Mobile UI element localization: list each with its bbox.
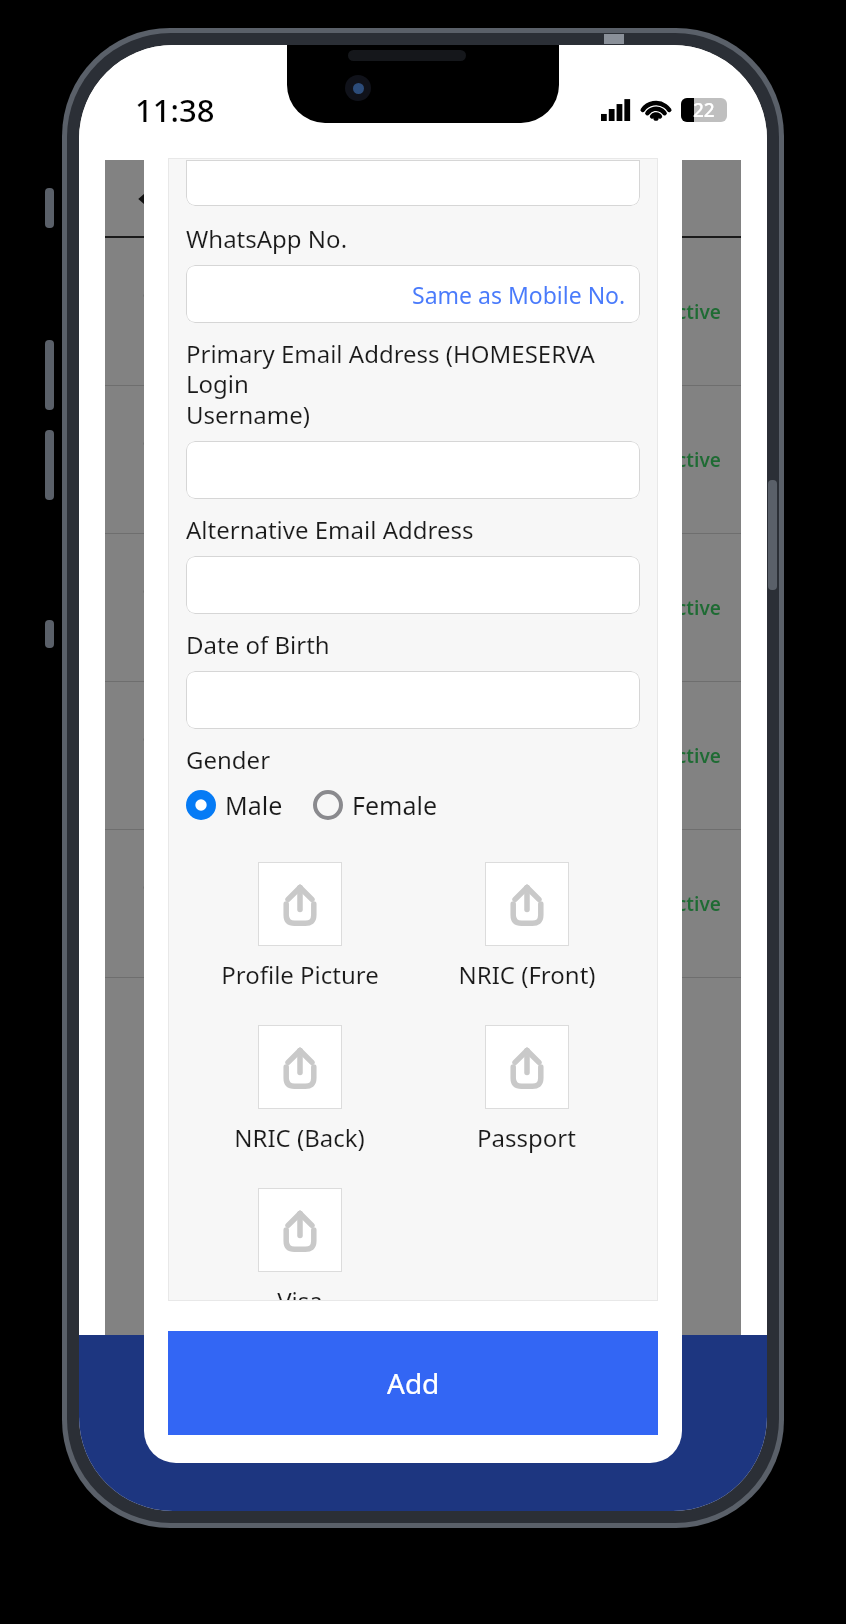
button[interactable]: Upload Profile Picture [221, 862, 379, 991]
button[interactable]: Same as Mobile No. [412, 279, 626, 310]
staticText: Date of Birth [186, 628, 330, 661]
staticText: Alternative Email Address [186, 513, 474, 546]
button[interactable]: Male [186, 788, 283, 822]
staticText: Gender [186, 743, 271, 776]
staticText: Active [664, 595, 721, 621]
button[interactable]: Upload NRIC (Front) [458, 862, 596, 991]
staticText: Primary Email Address (HOMESERVA Login U… [186, 337, 640, 431]
staticText: Active [664, 743, 721, 769]
staticText: New Sub-User Account [289, 1377, 557, 1411]
staticText: Add [387, 1364, 440, 1402]
button[interactable] [186, 671, 640, 729]
button[interactable]: Same as Mobile No. [186, 265, 640, 323]
staticText: Active [664, 891, 721, 917]
staticText: Active [664, 299, 721, 325]
staticText: 22 [693, 97, 715, 123]
staticText: 11:38 [135, 89, 215, 131]
button[interactable] [186, 556, 640, 614]
button[interactable]: Add [168, 1331, 658, 1435]
button[interactable] [186, 441, 640, 499]
staticText: Female [352, 788, 438, 822]
button[interactable] [186, 160, 640, 206]
staticText: Active [664, 447, 721, 473]
staticText: Passport [477, 1121, 576, 1154]
staticText: WhatsApp No. [186, 222, 348, 255]
staticText: Male [225, 788, 283, 822]
staticText: Visa [277, 1284, 323, 1301]
button[interactable]: Upload Passport [477, 1025, 576, 1154]
staticText: Profile Picture [221, 958, 379, 991]
staticText: NRIC (Front) [458, 958, 596, 991]
button[interactable]: Upload NRIC (Back) [234, 1025, 365, 1154]
button[interactable]: Female [313, 788, 438, 822]
staticText: NRIC (Back) [234, 1121, 365, 1154]
button[interactable]: Upload Visa [258, 1188, 342, 1301]
